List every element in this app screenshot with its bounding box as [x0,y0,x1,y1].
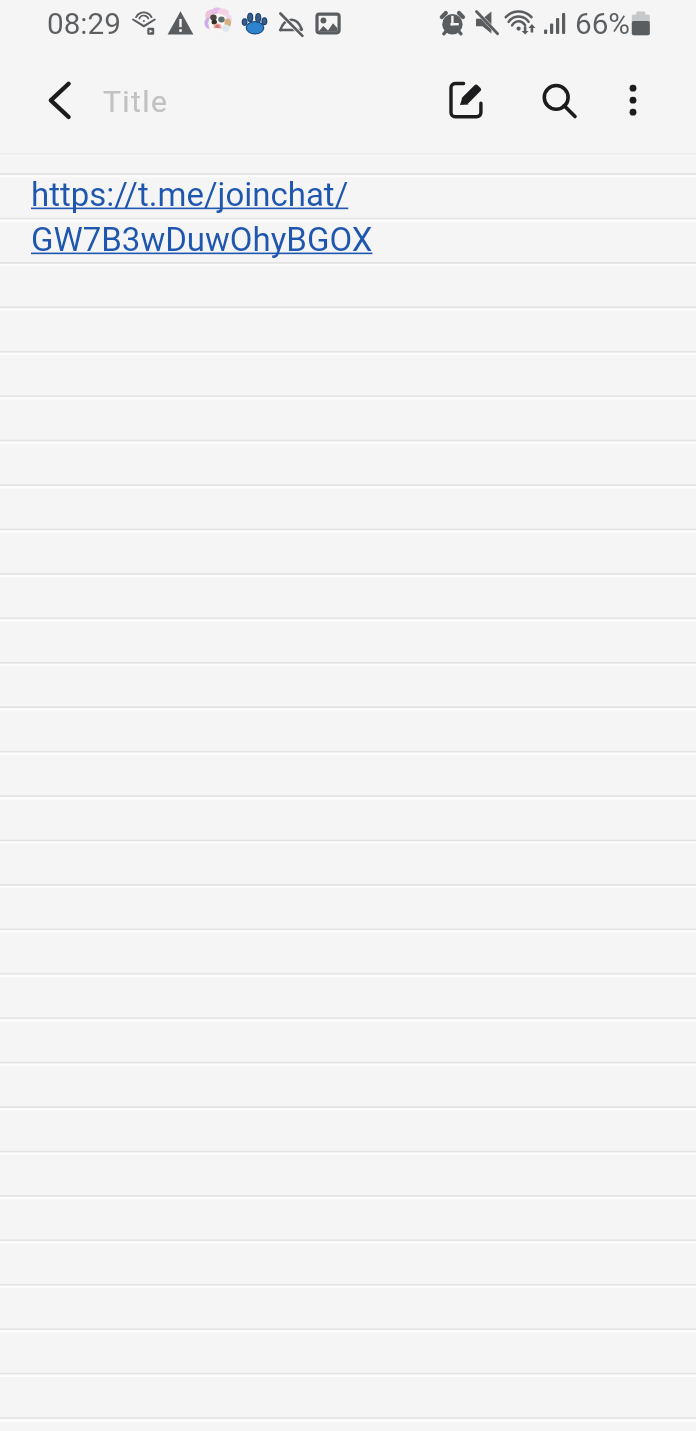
button[interactable]: https://t.me/joinchat/ [31,175,373,253]
staticText: GW7B3wDuwOhyBGOX [31,220,373,259]
staticText: Title [103,84,169,119]
button[interactable]: Note body [0,0,696,1431]
button[interactable]: Search [522,66,590,134]
button[interactable]: Back [36,70,84,118]
button[interactable]: More options [599,66,667,134]
staticText: https://t.me/joinchat/ [31,175,349,214]
button[interactable]: Edit [432,66,500,134]
staticText: 08:29 [47,6,121,41]
staticText: 66% [575,6,631,41]
